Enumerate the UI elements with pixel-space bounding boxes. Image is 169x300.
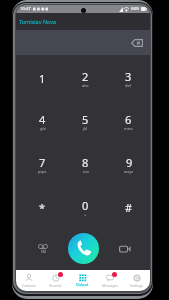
staticText: 10:47 — [20, 6, 31, 12]
button[interactable]: 8 — [64, 141, 107, 184]
button[interactable]: # — [107, 184, 150, 227]
staticText: # — [125, 200, 133, 215]
staticText: 8 — [82, 155, 89, 170]
staticText: wxyz — [124, 169, 134, 174]
button[interactable]: Dialpad — [69, 270, 96, 291]
button[interactable]: Video call — [114, 238, 136, 260]
staticText: mno — [124, 126, 133, 131]
button[interactable]: 4 — [20, 98, 64, 141]
staticText: 2 — [82, 69, 89, 84]
staticText: def — [125, 83, 132, 88]
staticText: + — [84, 212, 87, 217]
button[interactable]: 1 — [20, 55, 64, 98]
staticText: ghi — [40, 126, 46, 131]
staticText: 0 — [82, 198, 89, 213]
button[interactable]: 0 — [64, 184, 107, 227]
button[interactable]: * — [20, 184, 64, 227]
button[interactable]: 6 — [107, 98, 150, 141]
staticText: Dialpad — [76, 282, 89, 287]
staticText: VM — [41, 250, 46, 254]
staticText: 9 — [126, 155, 133, 170]
staticText: * — [39, 200, 46, 215]
button[interactable]: Settings — [123, 270, 150, 291]
button[interactable]: Tomislav Nova — [16, 13, 150, 30]
button[interactable]: Call — [68, 233, 99, 264]
button[interactable]: 3 — [107, 55, 150, 98]
staticText: pqrs — [38, 169, 47, 174]
staticText: Settings — [130, 283, 143, 288]
staticText: Tomislav Nova — [19, 18, 57, 25]
staticText: Contacts — [22, 283, 36, 288]
button[interactable]: 9 — [107, 141, 150, 184]
staticText: Messages — [102, 283, 118, 288]
button[interactable]: Messages — [96, 270, 123, 291]
staticText: jkl — [83, 126, 88, 131]
button[interactable]: Backspace — [128, 34, 146, 52]
staticText: 7 — [39, 155, 46, 170]
button[interactable]: 2 — [64, 55, 107, 98]
staticText: 3 — [125, 69, 132, 84]
staticText: 68% — [131, 6, 140, 12]
button[interactable]: 7 — [20, 141, 64, 184]
staticText: 1 — [39, 71, 46, 86]
button[interactable]: 5 — [64, 98, 107, 141]
button[interactable]: Contacts — [16, 270, 42, 291]
staticText: 5 — [82, 112, 89, 127]
staticText: 6 — [125, 112, 132, 127]
button[interactable]: Voicemail — [32, 238, 54, 260]
staticText: 4 — [39, 112, 46, 127]
button[interactable]: Recents — [42, 270, 69, 291]
staticText: abc — [82, 83, 89, 88]
staticText: tuv — [83, 169, 89, 174]
staticText: Recents — [49, 283, 62, 288]
